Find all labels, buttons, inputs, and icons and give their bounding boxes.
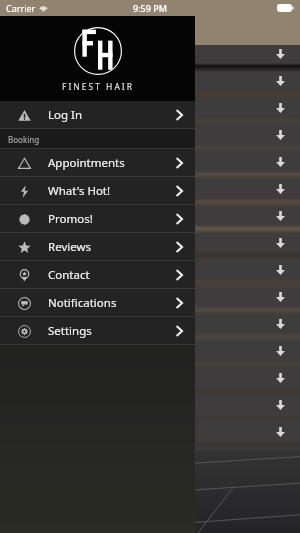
staticText: What's Hot! xyxy=(48,183,111,199)
staticText: Promos! xyxy=(48,211,93,227)
staticText: Log In xyxy=(48,107,83,123)
button[interactable]: What's Hot! xyxy=(0,177,195,205)
button[interactable]: Expand xyxy=(0,342,300,369)
button[interactable]: Expand xyxy=(0,45,300,72)
button[interactable]: Expand xyxy=(0,423,300,450)
other: Expand xyxy=(276,373,285,383)
other: Expand xyxy=(276,292,285,302)
button[interactable]: Expand xyxy=(0,369,300,396)
button[interactable]: Expand xyxy=(0,126,300,153)
button[interactable]: Expand xyxy=(0,315,300,342)
other: Expand xyxy=(276,319,285,329)
other: Expand xyxy=(276,103,285,113)
button[interactable]: Log In xyxy=(0,101,195,129)
button[interactable]: Settings xyxy=(0,317,195,345)
button[interactable]: Notifications xyxy=(0,289,195,317)
staticText: Carrier xyxy=(6,2,36,14)
button[interactable]: Appointments xyxy=(0,149,195,177)
staticText: Contact xyxy=(48,267,90,283)
button[interactable]: Contact xyxy=(0,261,195,289)
button[interactable]: Expand xyxy=(0,99,300,126)
other: Expand xyxy=(276,346,285,356)
button[interactable]: Expand xyxy=(0,180,300,207)
button[interactable]: Expand xyxy=(0,207,300,234)
other: Expand xyxy=(276,49,285,59)
button[interactable]: Expand xyxy=(0,396,300,423)
other: Expand xyxy=(276,157,285,167)
other: Expand xyxy=(276,76,285,86)
other: Expand xyxy=(276,184,285,194)
staticText: Appointments xyxy=(48,155,125,171)
staticText: Reviews xyxy=(48,239,92,255)
staticText: FINEST HAIR xyxy=(62,81,134,93)
other: Expand xyxy=(276,427,285,437)
other: Expand xyxy=(276,265,285,275)
staticText: Settings xyxy=(48,323,92,339)
button[interactable]: Expand xyxy=(0,261,300,288)
other: Expand xyxy=(276,211,285,221)
button[interactable]: Expand xyxy=(0,288,300,315)
button[interactable]: Expand xyxy=(0,153,300,180)
button[interactable]: Reviews xyxy=(0,233,195,261)
other: Expand xyxy=(276,238,285,248)
button[interactable]: Promos! xyxy=(0,205,195,233)
button[interactable]: Expand xyxy=(0,72,300,99)
staticText: Booking xyxy=(8,134,40,145)
staticText: 9:59 PM xyxy=(133,2,167,14)
other: Expand xyxy=(276,400,285,410)
button[interactable]: Expand xyxy=(0,234,300,261)
other: Expand xyxy=(276,130,285,140)
staticText: Notifications xyxy=(48,295,117,311)
